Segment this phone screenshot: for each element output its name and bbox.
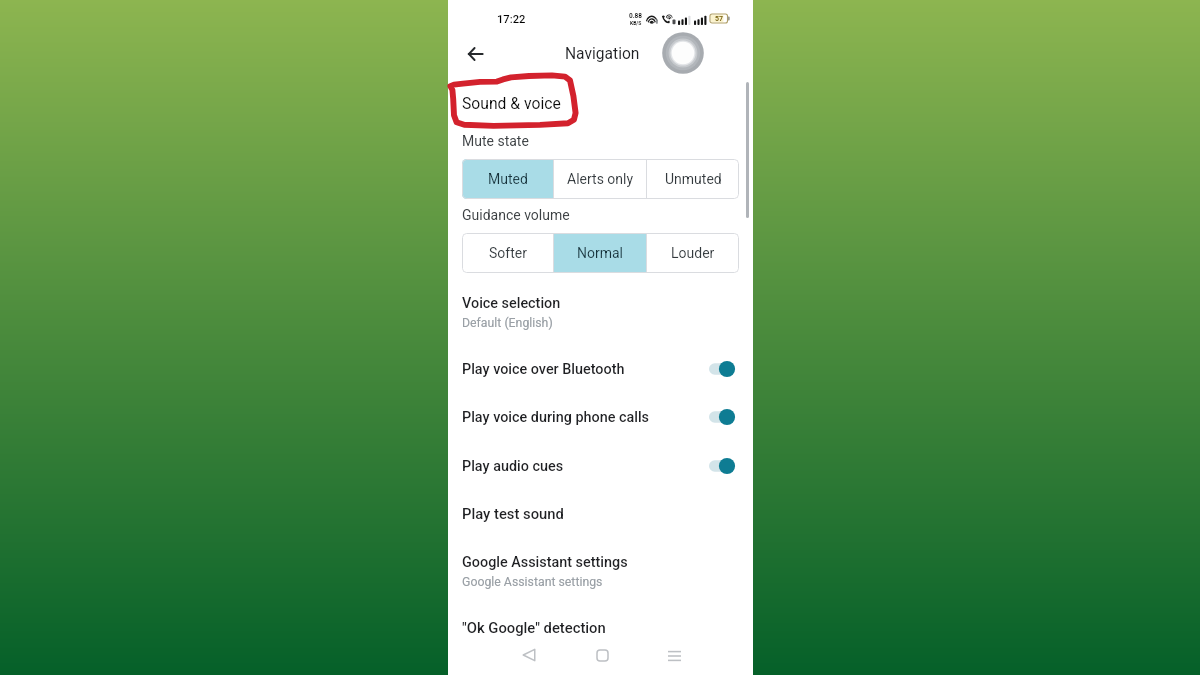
button[interactable]: Voice selection (448, 294, 753, 330)
button[interactable]: Recent apps (656, 638, 692, 674)
staticText: Play audio cues (462, 458, 709, 475)
button[interactable]: Unmuted (647, 159, 739, 199)
staticText: 0.88 (629, 12, 643, 20)
button[interactable]: Account profile (660, 30, 706, 76)
staticText: Google Assistant settings (462, 554, 628, 571)
button[interactable]: Play audio cues (448, 455, 753, 477)
staticText: 57 (715, 15, 724, 23)
staticText: Default (English) (462, 316, 553, 330)
staticText: Muted (488, 171, 528, 187)
button[interactable]: Back (459, 38, 491, 70)
staticText: Navigation (565, 45, 640, 63)
button[interactable]: Google Assistant settings (448, 553, 753, 589)
staticText: Louder (671, 245, 715, 261)
button[interactable]: Back (511, 637, 547, 673)
staticText: Play voice during phone calls (462, 409, 709, 426)
button[interactable]: Alerts only (554, 159, 646, 199)
staticText: Unmuted (665, 171, 722, 187)
staticText: Play voice over Bluetooth (462, 361, 709, 378)
staticText: KB/S (630, 20, 642, 26)
button[interactable]: Play voice during phone calls (448, 406, 753, 428)
staticText: Alerts only (567, 171, 634, 187)
staticText: Google Assistant settings (462, 575, 603, 589)
button[interactable]: Home (584, 637, 620, 673)
button[interactable]: Muted (462, 159, 553, 199)
button[interactable]: Play test sound (448, 502, 753, 524)
staticText: Play test sound (462, 505, 564, 522)
button[interactable]: Softer (462, 233, 553, 273)
button[interactable]: "Ok Google" detection (448, 616, 753, 638)
button[interactable]: Normal (554, 233, 646, 273)
staticText: Softer (489, 245, 527, 261)
staticText: "Ok Google" detection (462, 619, 606, 636)
staticText: Guidance volume (462, 207, 570, 223)
staticText: Sound & voice (462, 94, 561, 112)
staticText: Mute state (462, 133, 529, 149)
staticText: 17:22 (497, 13, 526, 26)
button[interactable]: Play voice over Bluetooth (448, 358, 753, 380)
staticText: Normal (577, 245, 624, 261)
staticText: Voice selection (462, 295, 561, 312)
button[interactable]: Louder (647, 233, 739, 273)
